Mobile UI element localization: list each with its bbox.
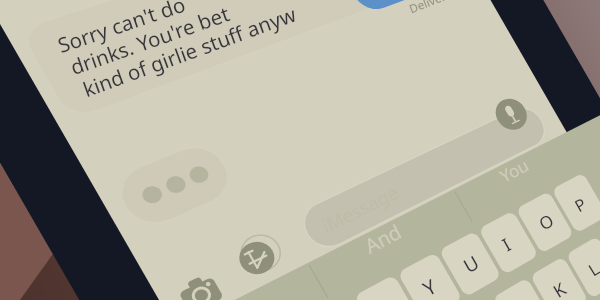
button[interactable]: Messages conversation [0, 0, 600, 300]
